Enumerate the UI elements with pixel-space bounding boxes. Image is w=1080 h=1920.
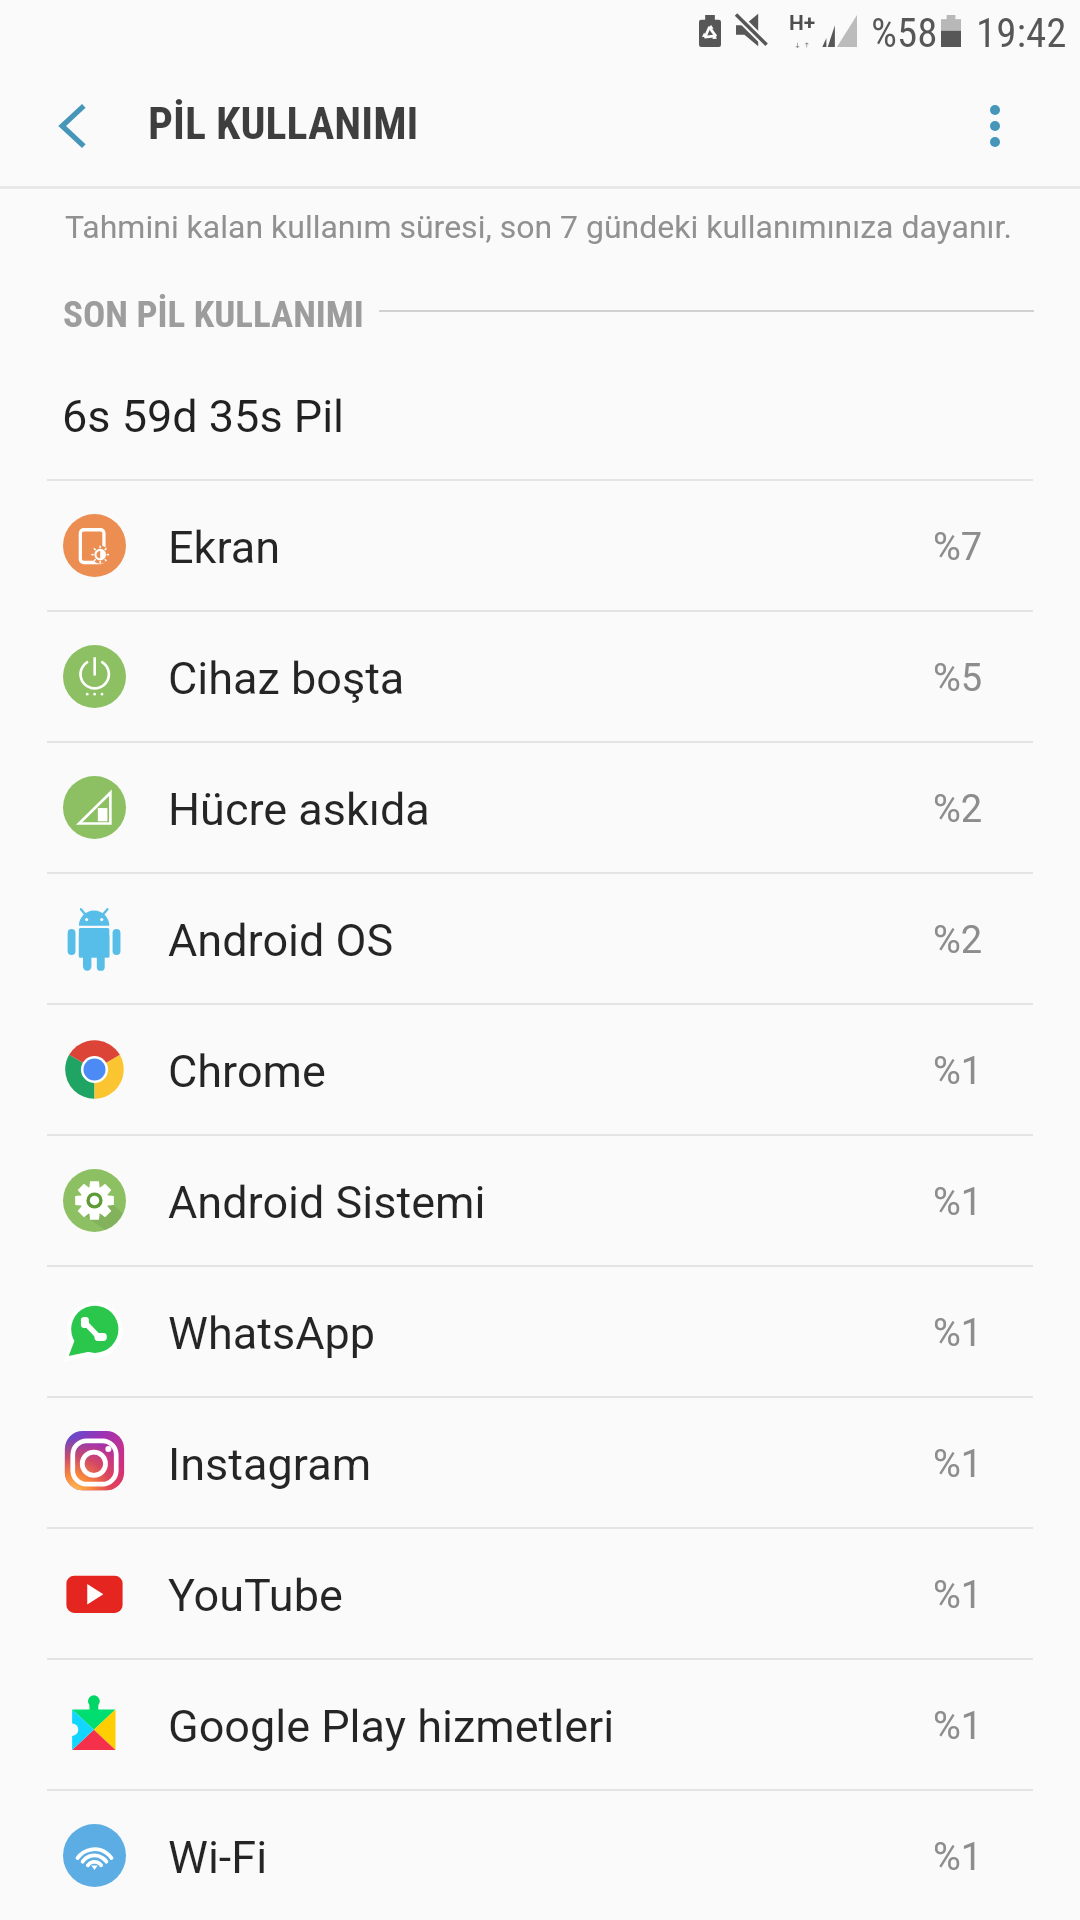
button[interactable]: Back [10,64,134,188]
staticText: Wi-Fi [168,1831,268,1884]
staticText: H+ [789,11,816,36]
staticText: Android OS [168,914,394,967]
staticText: %1 [933,1573,983,1618]
staticText: Chrome [168,1045,326,1098]
button[interactable]: Instagram [0,1398,1080,1527]
staticText: %58 [871,9,938,57]
staticText: Cihaz boşta [168,652,405,705]
staticText: 19:42 [976,9,1067,57]
staticText: YouTube [168,1569,343,1622]
button[interactable]: Cihaz boşta [0,612,1080,741]
staticText: PİL KULLANIMI [148,98,419,150]
staticText: Hücre askıda [168,783,430,836]
button[interactable]: WhatsApp [0,1267,1080,1396]
button[interactable]: Android OS [0,874,1080,1003]
button[interactable]: Wi-Fi [0,1791,1080,1920]
staticText: %2 [933,787,983,832]
staticText: %1 [933,1704,983,1749]
staticText: %1 [933,1180,983,1225]
staticText: Instagram [168,1438,372,1491]
button[interactable]: Google Play hizmetleri [0,1660,1080,1789]
staticText: Tahmini kalan kullanım süresi, son 7 gün… [65,208,1012,246]
button[interactable]: Hücre askıda [0,743,1080,872]
button[interactable]: Chrome [0,1005,1080,1134]
button[interactable]: Ekran [0,481,1080,610]
staticText: Android Sistemi [168,1176,486,1229]
staticText: %1 [933,1442,983,1487]
staticText: Google Play hizmetleri [168,1700,615,1753]
staticText: SON PİL KULLANIMI [63,293,364,336]
button[interactable]: More options [934,64,1058,188]
staticText: 6s 59d 35s Pil [62,390,345,443]
staticText: WhatsApp [168,1307,376,1360]
staticText: %5 [933,656,983,701]
staticText: %1 [933,1311,983,1356]
button[interactable]: Android Sistemi [0,1136,1080,1265]
staticText: %2 [933,918,983,963]
staticText: %7 [933,525,983,570]
staticText: Ekran [168,521,281,574]
staticText: %1 [933,1835,983,1880]
staticText: %1 [933,1049,983,1094]
button[interactable]: YouTube [0,1529,1080,1658]
